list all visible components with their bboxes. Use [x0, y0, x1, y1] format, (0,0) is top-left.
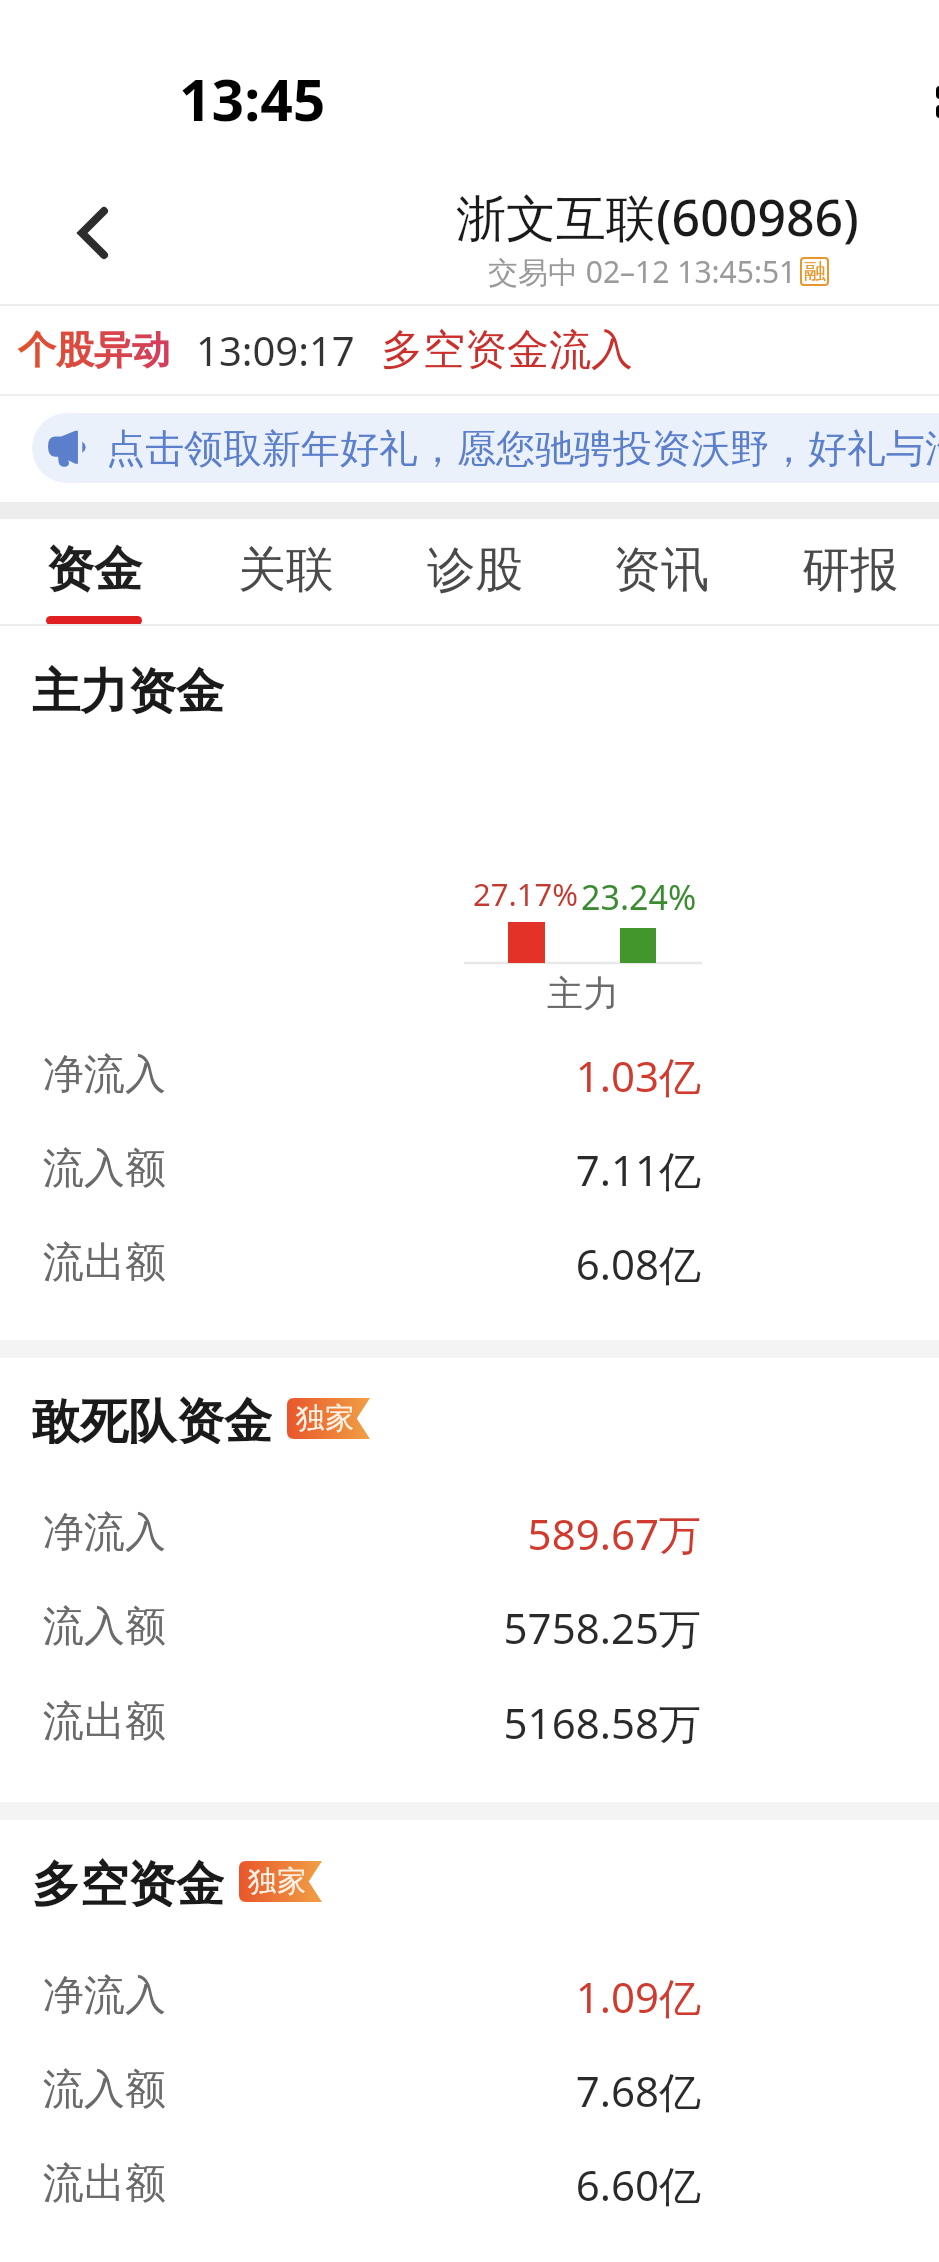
- staticText: 关联: [238, 540, 334, 600]
- staticText: 资金: [46, 540, 142, 600]
- staticText: 流出额: [43, 2158, 166, 2210]
- staticText: 13:09:17: [196, 323, 355, 377]
- button[interactable]: 流出额: [0, 1215, 939, 1311]
- staticText: 1.03亿: [0, 1047, 701, 1104]
- staticText: 589.67万: [0, 1505, 701, 1562]
- button[interactable]: 研报: [756, 519, 939, 625]
- button[interactable]: 诊股: [381, 519, 569, 625]
- staticText: 敢死队资金: [32, 1392, 272, 1444]
- button[interactable]: 资金: [0, 519, 188, 625]
- button[interactable]: 关联: [192, 519, 380, 625]
- staticText: 独家: [248, 1863, 306, 1900]
- button[interactable]: 点击领取新年好礼，愿您驰骋投资沃野，好礼与汽: [32, 413, 939, 483]
- staticText: 交易中 02–12 13:45:51: [488, 251, 797, 292]
- staticText: 23.24%: [581, 874, 697, 920]
- staticText: 流入额: [43, 1143, 166, 1195]
- staticText: 净流入: [43, 1970, 166, 2022]
- button[interactable]: 流出额: [0, 1674, 939, 1770]
- button[interactable]: 流出额: [0, 2136, 939, 2232]
- staticText: 6.60亿: [0, 2156, 701, 2213]
- staticText: 个股异动: [18, 326, 170, 374]
- staticText: 主力资金: [32, 662, 224, 714]
- staticText: 浙文互联(600986): [456, 183, 859, 251]
- staticText: 研报: [802, 540, 898, 600]
- staticText: 流出额: [43, 1696, 166, 1748]
- button[interactable]: 主力资金占比图: [440, 860, 730, 1020]
- button[interactable]: 流入额: [0, 2042, 939, 2138]
- staticText: 诊股: [427, 540, 523, 600]
- staticText: 多空资金: [32, 1855, 224, 1907]
- staticText: 主力: [547, 971, 619, 1016]
- staticText: 净流入: [43, 1507, 166, 1559]
- staticText: 点击领取新年好礼，愿您驰骋投资沃野，好礼与汽: [106, 424, 939, 473]
- staticText: 流入额: [43, 2064, 166, 2116]
- staticText: 5758.25万: [0, 1599, 701, 1656]
- button[interactable]: 净流入: [0, 1485, 939, 1581]
- button[interactable]: 流入额: [0, 1579, 939, 1675]
- button[interactable]: 个股异动: [0, 306, 939, 394]
- button[interactable]: 流入额: [0, 1121, 939, 1217]
- staticText: 6.08亿: [0, 1235, 701, 1292]
- button[interactable]: 净流入: [0, 1027, 939, 1123]
- button[interactable]: Back: [48, 185, 144, 281]
- button[interactable]: 净流入: [0, 1948, 939, 2044]
- staticText: 融: [804, 258, 826, 286]
- staticText: 资讯: [613, 540, 709, 600]
- staticText: 流出额: [43, 1237, 166, 1289]
- staticText: 13:45: [179, 60, 326, 138]
- staticText: 1.09亿: [0, 1968, 701, 2025]
- staticText: 5168.58万: [0, 1694, 701, 1751]
- staticText: 7.11亿: [0, 1141, 701, 1198]
- staticText: 7.68亿: [0, 2062, 701, 2119]
- staticText: 独家: [296, 1400, 354, 1437]
- staticText: 流入额: [43, 1601, 166, 1653]
- staticText: 多空资金流入: [381, 324, 633, 377]
- button[interactable]: 资讯: [567, 519, 755, 625]
- staticText: 净流入: [43, 1049, 166, 1101]
- staticText: 27.17%: [473, 873, 578, 915]
